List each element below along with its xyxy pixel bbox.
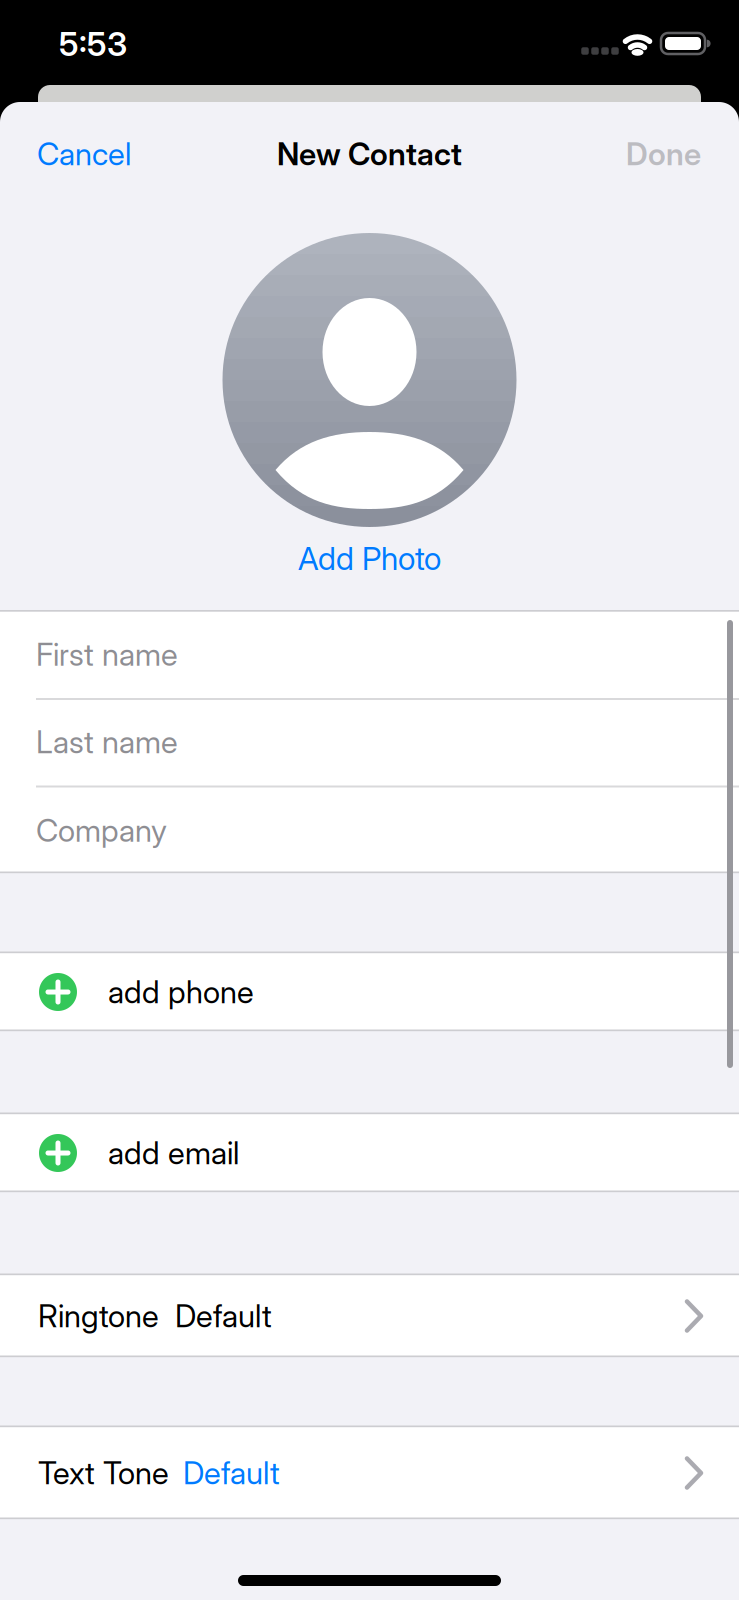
button[interactable]: Done xyxy=(626,135,701,173)
staticText: New Contact xyxy=(277,135,462,173)
staticText: Ringtone xyxy=(38,1297,159,1335)
button[interactable]: Last name xyxy=(0,698,739,785)
button[interactable]: Company xyxy=(0,787,739,874)
button[interactable]: Cancel xyxy=(37,135,131,173)
button[interactable]: First name xyxy=(0,611,739,698)
staticText: Default xyxy=(183,1454,280,1492)
staticText: First name xyxy=(36,636,178,673)
button[interactable]: Text Tone xyxy=(0,1427,739,1519)
staticText: 5:53 xyxy=(59,24,127,64)
staticText: Company xyxy=(36,812,167,849)
staticText: add phone xyxy=(108,973,254,1011)
button[interactable]: Ringtone xyxy=(0,1275,739,1357)
button[interactable]: Add Photo xyxy=(0,0,739,400)
staticText: add email xyxy=(108,1134,239,1172)
button[interactable]: add email xyxy=(0,1114,739,1192)
staticText: Cancel xyxy=(37,135,131,173)
staticText: Last name xyxy=(36,723,178,761)
button[interactable]: add phone xyxy=(0,953,739,1031)
staticText: Default xyxy=(175,1297,272,1335)
staticText: Add Photo xyxy=(298,539,441,577)
staticText: Text Tone xyxy=(38,1454,169,1492)
staticText: Done xyxy=(626,135,701,173)
